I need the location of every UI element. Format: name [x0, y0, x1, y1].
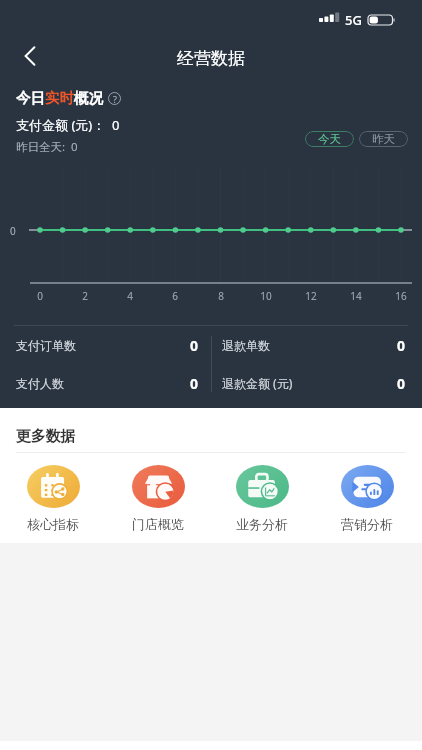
staticText: 退款单数	[222, 338, 270, 353]
staticText: 支付订单数	[16, 338, 76, 353]
staticText: 0	[190, 374, 199, 393]
staticText: 支付人数	[16, 376, 64, 391]
staticText: 营销分析	[341, 516, 393, 532]
staticText: 今天	[318, 132, 341, 146]
button[interactable]: 核心指标	[13, 465, 93, 532]
staticText: 更多数据	[16, 427, 76, 446]
button[interactable]: 支付订单数	[16, 334, 76, 356]
staticText: 0	[190, 336, 199, 355]
staticText: 0	[10, 224, 16, 238]
staticText: 今日实时概况	[16, 89, 103, 107]
staticText: ?	[113, 93, 117, 105]
button[interactable]: 今天	[305, 131, 354, 147]
staticText: 10	[252, 289, 280, 303]
staticText: 昨天	[372, 132, 395, 146]
staticText: 14	[342, 289, 370, 303]
staticText: 退款金额 (元)	[222, 375, 293, 391]
staticText: 2	[71, 289, 99, 303]
staticText: 核心指标	[27, 516, 79, 532]
staticText: 业务分析	[236, 516, 288, 532]
staticText: 8	[207, 289, 235, 303]
staticText: 5G	[345, 11, 362, 29]
button[interactable]: 业务分析	[222, 465, 302, 532]
button[interactable]: 昨天	[359, 131, 408, 147]
staticText: 门店概览	[132, 516, 184, 532]
staticText: 0	[26, 289, 54, 303]
staticText: 4	[116, 289, 144, 303]
button[interactable]: 门店概览	[118, 465, 198, 532]
staticText: 0	[397, 374, 406, 393]
staticText: 经营数据	[177, 48, 245, 69]
button[interactable]: 退款单数	[222, 334, 270, 356]
button[interactable]: Back	[8, 34, 52, 78]
staticText: 16	[387, 289, 415, 303]
staticText: 0	[397, 336, 406, 355]
staticText: 12	[297, 289, 325, 303]
staticText: 6	[161, 289, 189, 303]
button[interactable]: 营销分析	[327, 465, 407, 532]
staticText: 支付金额 (元)： 0	[16, 116, 120, 134]
staticText: 昨日全天: 0	[16, 139, 78, 155]
button[interactable]: Help	[108, 92, 121, 105]
button[interactable]: 退款金额 (元)	[222, 372, 293, 394]
button[interactable]: 支付人数	[16, 372, 64, 394]
